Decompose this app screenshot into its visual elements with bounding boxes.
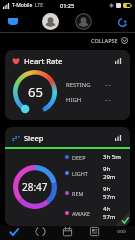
staticText: z (12, 135, 15, 142)
button[interactable]: z (5, 127, 130, 226)
button[interactable]: Challenges (27, 226, 54, 240)
staticText: HIGH (66, 96, 82, 104)
staticText: - - (105, 81, 111, 89)
staticText: Heart Rate (24, 56, 63, 66)
button[interactable]: Sync (115, 15, 129, 29)
staticText: z (18, 134, 20, 139)
staticText: LIGHT (72, 170, 88, 177)
staticText: LTE (35, 2, 44, 9)
staticText: 65 (28, 83, 43, 101)
staticText: 9h 29m (103, 165, 124, 181)
button[interactable]: More (108, 226, 135, 240)
staticText: 4h 57m (103, 205, 124, 221)
staticText: 3h 5m (103, 153, 121, 161)
button[interactable]: Profile (75, 13, 92, 30)
button[interactable]: COLLAPSE (91, 37, 128, 44)
staticText: 01:25 (60, 2, 75, 9)
button[interactable]: Heart Rate (5, 50, 130, 120)
button[interactable]: Profile (42, 13, 59, 30)
staticText: REM (72, 190, 84, 197)
button[interactable]: Chart (113, 133, 123, 143)
staticText: T-Mobile (12, 2, 33, 9)
staticText: Sleep (24, 133, 44, 143)
button[interactable]: News Feed (81, 226, 108, 240)
staticText: DEEP (72, 154, 86, 161)
button[interactable]: Chart (113, 56, 123, 66)
staticText: 9h 57m (103, 185, 124, 201)
button[interactable]: Calendar (54, 226, 81, 240)
staticText: - - (105, 96, 111, 104)
staticText: z (15, 134, 18, 140)
staticText: AWAKE (72, 210, 91, 217)
button[interactable]: My Day (0, 226, 27, 240)
staticText: RESTING (66, 81, 91, 89)
staticText: 28:47 (22, 180, 48, 194)
staticText: COLLAPSE (91, 37, 118, 44)
button[interactable]: Badges (6, 15, 20, 29)
